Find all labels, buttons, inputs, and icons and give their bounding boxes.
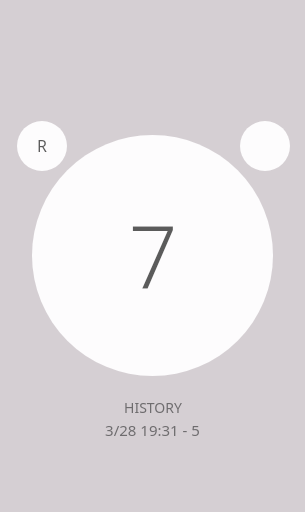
- button[interactable]: HISTORY: [105, 398, 200, 440]
- button[interactable]: R: [17, 121, 67, 171]
- staticText: R: [37, 135, 47, 157]
- button[interactable]: 7: [32, 135, 273, 376]
- staticText: HISTORY: [124, 398, 182, 417]
- button[interactable]: Undo: [240, 121, 290, 171]
- staticText: 7: [128, 196, 178, 313]
- staticText: 3/28 19:31 - 5: [105, 420, 200, 440]
